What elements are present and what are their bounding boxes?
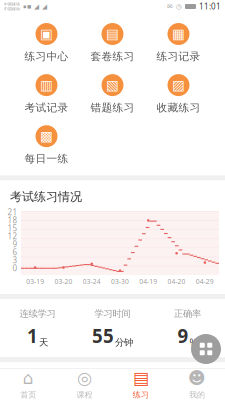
button[interactable]: ☻: [169, 363, 225, 400]
staticText: ▦: [172, 26, 185, 41]
staticText: 03-20: [54, 277, 72, 286]
button[interactable]: ▤: [112, 363, 169, 400]
staticText: 3: [12, 255, 17, 265]
staticText: 0: [12, 263, 17, 273]
staticText: 学习时间: [94, 308, 130, 319]
staticText: 04-29: [196, 277, 214, 286]
staticText: 正确率: [174, 308, 201, 319]
staticText: ▥: [40, 77, 53, 93]
button[interactable]: ▤: [79, 23, 145, 63]
staticText: 0/0知识点: [18, 372, 58, 385]
staticText: ◎: [77, 368, 92, 388]
staticText: 练习记录: [156, 50, 200, 63]
button[interactable]: More tools: [191, 334, 221, 364]
staticText: 15: [7, 223, 17, 233]
button[interactable]: ▨: [145, 74, 211, 114]
staticText: ▪◼: [23, 3, 31, 10]
staticText: 1: [27, 323, 38, 348]
staticText: 12: [7, 231, 17, 241]
staticText: 收藏练习: [156, 101, 200, 114]
staticText: ▧: [106, 77, 119, 93]
staticText: 805/1490题: [170, 372, 217, 385]
staticText: 中国移动: [4, 2, 20, 6]
staticText: ▤: [106, 26, 119, 41]
staticText: 9: [12, 239, 17, 249]
staticText: ▨: [172, 77, 185, 93]
staticText: 练习: [133, 390, 149, 400]
staticText: 03-30: [111, 277, 129, 286]
staticText: ◷: [176, 3, 182, 10]
staticText: 21: [7, 207, 17, 217]
staticText: 中国移动: [4, 6, 20, 11]
staticText: ▣: [40, 26, 53, 41]
staticText: 18: [7, 215, 17, 225]
button[interactable]: ▩: [13, 125, 79, 165]
staticText: 首页: [20, 390, 36, 400]
staticText: 6: [12, 247, 17, 257]
staticText: 04-19: [139, 277, 157, 286]
staticText: 04-20: [168, 277, 186, 286]
staticText: ✉: [167, 3, 173, 10]
staticText: 11:01: [199, 1, 221, 12]
button[interactable]: ⌂: [0, 363, 56, 400]
staticText: 03-19: [26, 277, 44, 286]
button[interactable]: ▣: [13, 23, 79, 63]
button[interactable]: ▥: [13, 74, 79, 114]
staticText: %: [189, 336, 197, 348]
staticText: 错题练习: [90, 101, 134, 114]
staticText: 每日一练: [24, 152, 68, 165]
staticText: 套卷练习: [90, 50, 134, 63]
staticText: 55: [92, 323, 114, 348]
button[interactable]: ▦: [145, 23, 211, 63]
staticText: 03-24: [83, 277, 101, 286]
staticText: 练习中心: [24, 50, 68, 63]
staticText: 考试记录: [24, 101, 68, 114]
staticText: 9: [177, 323, 188, 348]
staticText: 考试练习情况: [10, 189, 82, 204]
staticText: 天: [39, 337, 48, 348]
staticText: ▩: [40, 129, 53, 144]
button[interactable]: ◎: [56, 363, 112, 400]
staticText: ▤: [133, 368, 149, 388]
staticText: 连续学习: [19, 308, 55, 319]
staticText: 课程: [76, 390, 92, 400]
staticText: ◢: [34, 3, 39, 10]
staticText: ◢: [42, 3, 47, 10]
staticText: 分钟: [115, 337, 133, 348]
button[interactable]: ▧: [79, 74, 145, 114]
staticText: 我的: [189, 390, 205, 400]
staticText: ☻: [188, 368, 206, 388]
staticText: ⌂: [23, 368, 34, 388]
